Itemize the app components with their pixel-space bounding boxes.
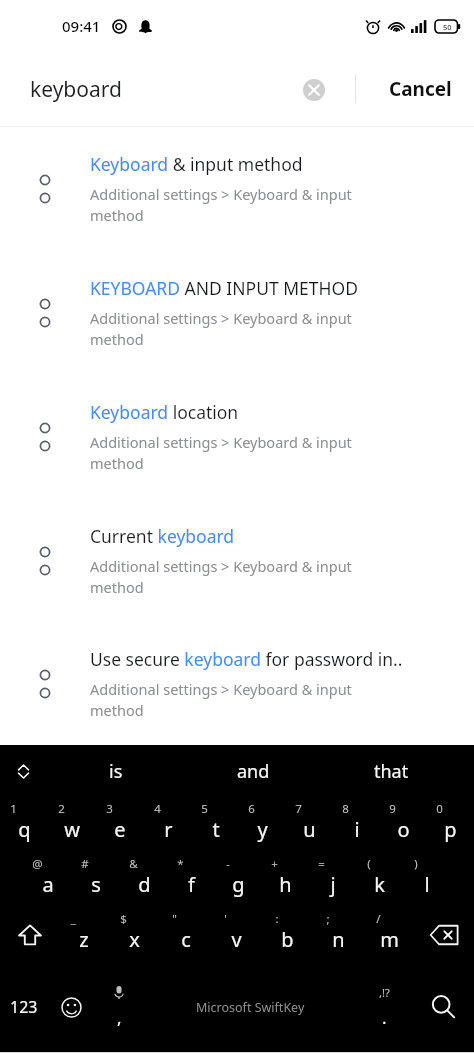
staticText: '	[224, 911, 227, 927]
staticText: 123	[10, 996, 38, 1018]
button[interactable]: 1	[0, 797, 48, 852]
staticText: =	[318, 856, 325, 872]
staticText: 4	[154, 801, 161, 817]
button[interactable]: Keyboard location	[0, 375, 474, 499]
staticText: z	[79, 926, 89, 953]
staticText: j	[330, 871, 336, 898]
button[interactable]: Clear search	[299, 75, 328, 104]
staticText: w	[64, 816, 80, 843]
staticText: "	[172, 911, 177, 927]
button[interactable]: +	[262, 852, 309, 907]
button[interactable]: 6	[239, 797, 286, 852]
button[interactable]: /	[364, 907, 415, 962]
staticText: Additional settings > Keyboard & input m…	[90, 184, 352, 226]
button[interactable]: KEYBOARD AND INPUT METHOD	[0, 251, 474, 375]
button[interactable]: is	[47, 745, 184, 797]
button[interactable]: Keyboard & input method	[0, 127, 474, 251]
staticText: -	[226, 856, 230, 872]
button[interactable]: &	[120, 852, 168, 907]
staticText: _	[70, 911, 76, 927]
staticText: e	[114, 816, 126, 843]
button[interactable]: and	[184, 745, 322, 797]
staticText: KEYBOARD AND INPUT METHOD	[90, 276, 358, 300]
button[interactable]: "	[160, 907, 211, 962]
button[interactable]: *	[168, 852, 215, 907]
button[interactable]: 7	[286, 797, 333, 852]
staticText: ,!?	[379, 985, 390, 1000]
staticText: y	[257, 816, 268, 843]
staticText: Keyboard & input method	[90, 152, 303, 176]
button[interactable]: 4	[144, 797, 192, 852]
button[interactable]: Emoji	[48, 962, 94, 1052]
button[interactable]: )	[403, 852, 450, 907]
staticText: c	[181, 926, 191, 953]
staticText: o	[397, 816, 410, 843]
staticText: l	[424, 871, 430, 898]
button[interactable]: _	[59, 907, 109, 962]
staticText: Additional settings > Keyboard & input m…	[90, 556, 352, 598]
staticText: a	[42, 871, 54, 898]
button[interactable]: Expand suggestions	[0, 745, 47, 797]
staticText: Current keyboard	[90, 524, 235, 548]
staticText: x	[129, 926, 140, 953]
staticText: 8	[342, 801, 349, 817]
button[interactable]: 123	[0, 962, 48, 1052]
button[interactable]: Period	[356, 962, 412, 1052]
button[interactable]: 5	[192, 797, 239, 852]
staticText: +	[271, 856, 278, 872]
button[interactable]: Current keyboard	[0, 499, 474, 623]
staticText: q	[18, 816, 31, 843]
staticText: 09:41	[62, 16, 101, 36]
staticText: b	[281, 926, 294, 953]
staticText: ;	[326, 911, 330, 927]
staticText: Use secure keyboard for password in..	[90, 647, 403, 671]
staticText: 7	[295, 801, 302, 817]
button[interactable]: Cancel	[367, 66, 474, 112]
staticText: that	[374, 759, 409, 784]
button[interactable]: @	[24, 852, 72, 907]
staticText: Additional settings > Keyboard & input m…	[90, 308, 352, 350]
staticText: i	[354, 816, 360, 843]
staticText: ,	[117, 1006, 122, 1029]
staticText: Cancel	[389, 76, 452, 102]
staticText: t	[212, 816, 220, 843]
staticText: 3	[106, 801, 113, 817]
button[interactable]: 9	[380, 797, 427, 852]
staticText: (	[367, 856, 371, 872]
button[interactable]: Shift	[0, 907, 59, 962]
staticText: /	[376, 911, 381, 927]
staticText: :	[275, 911, 279, 927]
button[interactable]: :	[262, 907, 313, 962]
button[interactable]: $	[109, 907, 160, 962]
staticText: h	[279, 871, 292, 898]
button[interactable]: (	[356, 852, 403, 907]
button[interactable]: '	[211, 907, 262, 962]
staticText: 50	[443, 22, 452, 32]
button[interactable]: that	[322, 745, 460, 797]
staticText: is	[109, 759, 123, 784]
button[interactable]: 2	[48, 797, 96, 852]
staticText: u	[303, 816, 316, 843]
button[interactable]: 3	[96, 797, 144, 852]
staticText: r	[164, 816, 173, 843]
button[interactable]: Voice input and comma	[94, 962, 144, 1052]
staticText: $	[120, 911, 127, 927]
staticText: p	[444, 816, 457, 843]
staticText: )	[414, 856, 418, 872]
staticText: .	[382, 1006, 387, 1029]
button[interactable]: Backspace	[415, 907, 474, 962]
staticText: 1	[10, 801, 17, 817]
staticText: f	[188, 871, 195, 898]
button[interactable]: Search	[412, 962, 474, 1052]
button[interactable]: 8	[333, 797, 380, 852]
button[interactable]: =	[309, 852, 356, 907]
staticText: Microsoft SwiftKey	[196, 999, 305, 1016]
button[interactable]: 0	[427, 797, 474, 852]
button[interactable]: ;	[313, 907, 364, 962]
staticText: n	[332, 926, 345, 953]
staticText: Additional settings > Keyboard & input m…	[90, 679, 352, 721]
button[interactable]: #	[72, 852, 120, 907]
button[interactable]: Microsoft SwiftKey	[144, 962, 356, 1052]
button[interactable]: -	[215, 852, 262, 907]
button[interactable]: Use secure keyboard for password in..	[0, 623, 474, 745]
